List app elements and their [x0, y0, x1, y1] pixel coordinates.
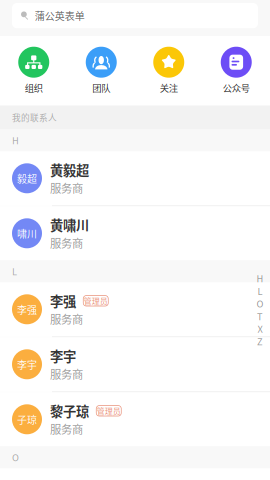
staticText: 组织	[25, 81, 43, 94]
staticText: 李宇	[50, 346, 76, 365]
button[interactable]: 关注	[135, 47, 202, 93]
button[interactable]: 啸川	[0, 206, 270, 260]
staticText: 啸川	[17, 226, 37, 241]
staticText: H	[12, 133, 19, 147]
staticText: 李强	[50, 291, 76, 310]
staticText: 服务商	[50, 366, 83, 382]
staticText: 公众号	[223, 81, 250, 94]
staticText: Z	[257, 334, 263, 348]
staticText: O	[12, 450, 19, 464]
staticText: L	[257, 284, 262, 298]
button[interactable]: 公众号	[202, 47, 270, 93]
staticText: 我的联系人	[12, 111, 57, 124]
staticText: 服务商	[50, 311, 83, 327]
staticText: 管理员	[84, 295, 108, 307]
staticText: T	[257, 309, 263, 323]
staticText: 黄啸川	[50, 215, 89, 234]
button[interactable]: 李强	[0, 282, 270, 336]
staticText: 关注	[160, 81, 178, 94]
staticText: 蒲公英表单	[35, 8, 85, 23]
staticText: 团队	[92, 81, 110, 94]
staticText: X	[257, 322, 262, 335]
staticText: 子琼	[17, 412, 37, 427]
staticText: 服务商	[50, 421, 83, 437]
staticText: 黄毅超	[50, 160, 89, 179]
staticText: 黎子琼	[50, 401, 89, 420]
staticText: 服务商	[50, 180, 83, 196]
button[interactable]: 蒲公英表单	[12, 3, 258, 28]
staticText: H	[256, 271, 263, 285]
staticText: 毅超	[17, 171, 37, 186]
staticText: L	[12, 264, 17, 278]
staticText: 服务商	[50, 235, 83, 251]
staticText: 李强	[17, 302, 37, 317]
button[interactable]: 团队	[67, 47, 135, 93]
staticText: 管理员	[97, 405, 121, 417]
button[interactable]: 组织	[0, 47, 67, 93]
button[interactable]: 毅超	[0, 151, 270, 205]
button[interactable]: 李宇	[0, 337, 270, 391]
button[interactable]: 子琼	[0, 392, 270, 446]
staticText: O	[256, 297, 263, 310]
staticText: 李宇	[17, 357, 37, 372]
